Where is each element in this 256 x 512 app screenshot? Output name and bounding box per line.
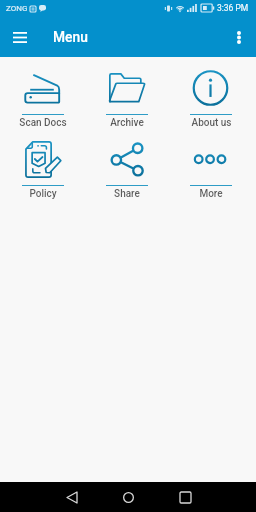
button[interactable]: Back bbox=[43, 482, 100, 512]
staticText: More bbox=[199, 188, 223, 200]
button[interactable]: More bbox=[169, 139, 253, 210]
staticText: Menu bbox=[53, 29, 88, 45]
button[interactable]: About us bbox=[169, 68, 253, 139]
staticText: Policy bbox=[29, 188, 57, 200]
staticText: Share bbox=[114, 188, 140, 200]
button[interactable]: Policy bbox=[0, 139, 85, 210]
staticText: ZONG bbox=[6, 4, 28, 13]
button[interactable]: Recent apps bbox=[157, 482, 214, 512]
button[interactable]: More options bbox=[226, 24, 252, 50]
staticText: About us bbox=[191, 117, 232, 129]
button[interactable]: Open navigation drawer bbox=[6, 23, 34, 51]
button[interactable]: Home bbox=[100, 482, 157, 512]
staticText: Scan Docs bbox=[19, 117, 67, 129]
staticText: 3:36 PM bbox=[217, 3, 249, 13]
staticText: Archive bbox=[110, 117, 144, 129]
button[interactable]: Archive bbox=[85, 68, 169, 139]
button[interactable]: Scan Docs bbox=[0, 68, 85, 139]
button[interactable]: Share bbox=[85, 139, 169, 210]
